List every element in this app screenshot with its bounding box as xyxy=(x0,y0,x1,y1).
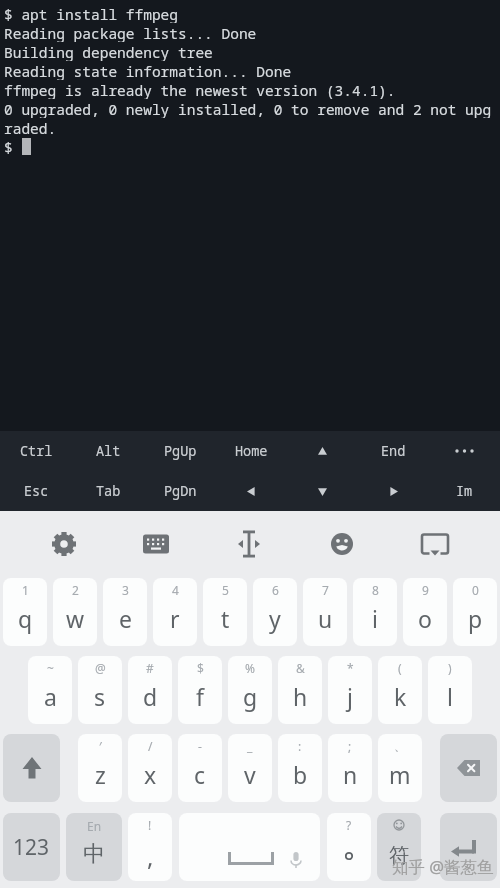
staticText: a xyxy=(44,681,57,712)
staticText: Home xyxy=(235,442,268,460)
staticText: r xyxy=(170,603,180,634)
staticText: ) xyxy=(448,660,452,676)
staticText: $ xyxy=(197,660,204,676)
staticText: m xyxy=(389,759,411,790)
button[interactable] xyxy=(132,520,180,568)
staticText: PgDn xyxy=(164,482,197,500)
staticText: Tab xyxy=(96,482,121,500)
staticText: 0 upgraded, 0 newly installed, 0 to remo… xyxy=(4,99,492,118)
staticText: ? xyxy=(346,817,352,833)
staticText: $ xyxy=(4,137,22,156)
button[interactable]: $ xyxy=(178,656,222,724)
button[interactable]: 0 xyxy=(453,578,497,646)
staticText: d xyxy=(143,681,158,712)
staticText: ′ xyxy=(99,738,102,754)
staticText: : xyxy=(298,738,302,754)
staticText: Building dependency tree xyxy=(4,42,213,61)
button[interactable]: Im xyxy=(429,471,500,511)
button[interactable]: @ xyxy=(78,656,122,724)
staticText: u xyxy=(318,603,333,634)
staticText: o xyxy=(418,603,432,634)
button[interactable]: 123 xyxy=(3,813,60,881)
staticText: w xyxy=(66,603,85,634)
button[interactable] xyxy=(411,520,459,568)
staticText: ; xyxy=(348,738,352,754)
button[interactable]: ) xyxy=(428,656,472,724)
staticText: k xyxy=(394,681,407,712)
button[interactable]: & xyxy=(278,656,322,724)
staticText: z xyxy=(95,759,106,790)
button[interactable]: En xyxy=(66,813,122,881)
staticText: * xyxy=(347,660,354,676)
staticText: - xyxy=(198,738,202,754)
staticText: j xyxy=(347,681,353,712)
button[interactable]: 符 xyxy=(377,813,421,881)
button[interactable]: ! xyxy=(128,813,172,881)
button[interactable]: PgDn xyxy=(144,471,216,511)
button[interactable] xyxy=(40,520,88,568)
staticText: @ xyxy=(95,660,106,676)
button[interactable]: 8 xyxy=(353,578,397,646)
button[interactable]: 1 xyxy=(3,578,47,646)
button[interactable] xyxy=(440,813,497,881)
button[interactable]: 9 xyxy=(403,578,447,646)
button[interactable]: : xyxy=(278,734,322,802)
staticText: ffmpeg is already the newest version (3.… xyxy=(4,80,396,99)
button[interactable]: 5 xyxy=(203,578,247,646)
staticText: 中 xyxy=(83,840,105,868)
button[interactable]: 3 xyxy=(103,578,147,646)
button[interactable]: 、 xyxy=(378,734,422,802)
staticText: 8 xyxy=(372,582,379,598)
staticText: n xyxy=(343,759,358,790)
staticText: x xyxy=(144,759,157,790)
staticText: 、 xyxy=(394,738,406,753)
button[interactable] xyxy=(440,734,497,802)
button[interactable]: Alt xyxy=(72,431,144,471)
staticText: 0 xyxy=(472,582,479,598)
staticText: t xyxy=(221,603,230,634)
staticText: Reading package lists... Done xyxy=(4,23,257,42)
staticText: 符 xyxy=(389,843,409,868)
button[interactable]: ~ xyxy=(28,656,72,724)
button[interactable] xyxy=(429,431,500,471)
button[interactable]: ′ xyxy=(78,734,122,802)
button[interactable]: Home xyxy=(216,431,287,471)
staticText: , xyxy=(147,840,154,873)
button[interactable] xyxy=(216,471,287,511)
button[interactable]: ; xyxy=(328,734,372,802)
button[interactable]: % xyxy=(228,656,272,724)
staticText: Esc xyxy=(24,482,49,500)
button[interactable] xyxy=(287,431,358,471)
staticText: End xyxy=(381,442,406,460)
button[interactable] xyxy=(179,813,320,881)
staticText: q xyxy=(18,603,33,634)
button[interactable]: ? xyxy=(327,813,371,881)
staticText: Reading state information... Done xyxy=(4,61,292,80)
button[interactable]: 6 xyxy=(253,578,297,646)
button[interactable]: 2 xyxy=(53,578,97,646)
button[interactable]: 4 xyxy=(153,578,197,646)
button[interactable]: * xyxy=(328,656,372,724)
staticText: c xyxy=(194,759,206,790)
button[interactable] xyxy=(3,734,60,802)
button[interactable]: PgUp xyxy=(144,431,216,471)
button[interactable]: End xyxy=(358,431,429,471)
button[interactable] xyxy=(287,471,358,511)
button[interactable]: / xyxy=(128,734,172,802)
button[interactable]: 7 xyxy=(303,578,347,646)
button[interactable] xyxy=(225,520,273,568)
button[interactable] xyxy=(318,520,366,568)
staticText: l xyxy=(447,681,453,712)
button[interactable]: - xyxy=(178,734,222,802)
button[interactable]: Ctrl xyxy=(0,431,72,471)
staticText: 2 xyxy=(72,582,79,598)
staticText: ~ xyxy=(47,660,54,676)
button[interactable]: _ xyxy=(228,734,272,802)
staticText: # xyxy=(146,660,154,676)
button[interactable]: Esc xyxy=(0,471,72,511)
staticText: 7 xyxy=(322,582,329,598)
button[interactable]: # xyxy=(128,656,172,724)
button[interactable]: ( xyxy=(378,656,422,724)
button[interactable]: Tab xyxy=(72,471,144,511)
button[interactable] xyxy=(358,471,429,511)
